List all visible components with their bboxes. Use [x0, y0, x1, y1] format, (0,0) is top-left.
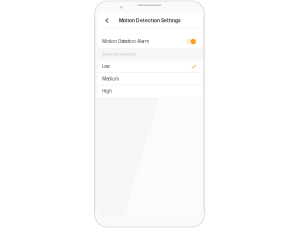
staticText: Medium: [102, 76, 119, 81]
staticText: High: [102, 89, 112, 94]
button[interactable]: High: [97, 85, 202, 97]
button[interactable]: Medium: [97, 73, 202, 85]
button[interactable]: Back: [97, 14, 113, 27]
button[interactable]: Low: [97, 60, 202, 72]
staticText: Low: [102, 64, 109, 69]
staticText: Select the sensitivity: [102, 52, 136, 56]
staticText: Motion Detection Settings: [119, 18, 181, 23]
button[interactable]: Motion Detection Alarm: [97, 29, 202, 48]
staticText: Motion Detection Alarm: [102, 39, 149, 44]
